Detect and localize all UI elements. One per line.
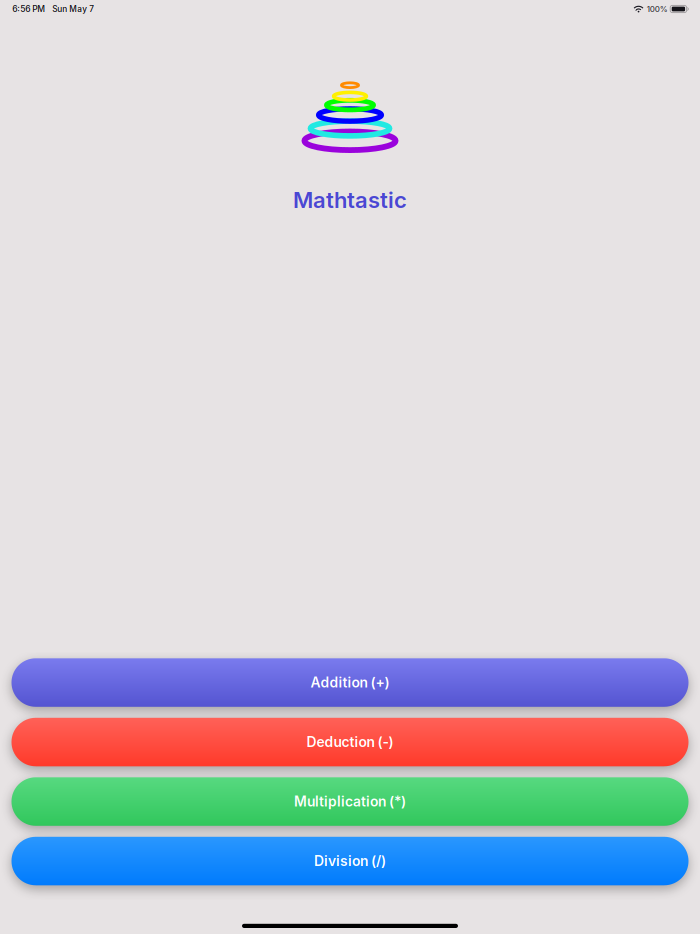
staticText: Sun May 7 <box>52 4 94 14</box>
button[interactable]: Division (/) <box>11 837 688 885</box>
button[interactable]: Deduction (-) <box>11 718 688 766</box>
staticText: Mathtastic <box>293 186 407 213</box>
staticText: Addition (+) <box>310 674 389 691</box>
staticText: Deduction (-) <box>306 734 393 750</box>
staticText: Division (/) <box>314 853 386 869</box>
staticText: 6:56 PM <box>12 4 45 14</box>
button[interactable]: Addition (+) <box>11 658 688 707</box>
staticText: 100% <box>647 4 668 14</box>
staticText: Multiplication (*) <box>294 793 406 810</box>
button[interactable]: Multiplication (*) <box>11 777 688 826</box>
